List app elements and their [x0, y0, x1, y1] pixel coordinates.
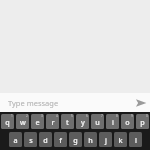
- staticText: r: [51, 117, 55, 127]
- staticText: y: [81, 117, 85, 127]
- staticText: l: [135, 135, 137, 145]
- button[interactable]: 3: [31, 114, 44, 129]
- staticText: 7: [101, 114, 103, 118]
- staticText: Type message: [8, 98, 59, 108]
- staticText: 8: [116, 114, 118, 118]
- staticText: 3: [41, 114, 43, 118]
- button[interactable]: j: [99, 132, 112, 147]
- button[interactable]: k: [114, 132, 127, 147]
- button[interactable]: 4: [46, 114, 59, 129]
- staticText: i: [112, 117, 114, 127]
- staticText: u: [95, 117, 100, 127]
- staticText: h: [88, 135, 93, 145]
- button[interactable]: a: [9, 132, 22, 147]
- staticText: a: [13, 135, 18, 145]
- button[interactable]: h: [84, 132, 97, 147]
- staticText: 0: [146, 114, 148, 118]
- button[interactable]: Type message: [0, 93, 131, 112]
- staticText: d: [43, 135, 48, 145]
- button[interactable]: 6: [76, 114, 89, 129]
- button[interactable]: l: [129, 132, 142, 147]
- staticText: q: [5, 117, 10, 127]
- staticText: 9: [131, 114, 133, 118]
- staticText: 5: [71, 114, 73, 118]
- button[interactable]: Send: [131, 93, 150, 112]
- staticText: t: [66, 117, 69, 127]
- button[interactable]: 8: [106, 114, 119, 129]
- staticText: e: [35, 117, 40, 127]
- staticText: 4: [56, 114, 58, 118]
- staticText: p: [140, 117, 145, 127]
- button[interactable]: 5: [61, 114, 74, 129]
- staticText: s: [29, 135, 33, 145]
- button[interactable]: 0: [136, 114, 149, 129]
- staticText: k: [118, 135, 123, 145]
- button[interactable]: f: [54, 132, 67, 147]
- staticText: 2: [26, 114, 28, 118]
- button[interactable]: 7: [91, 114, 104, 129]
- staticText: g: [73, 135, 78, 145]
- staticText: j: [105, 135, 107, 145]
- button[interactable]: s: [24, 132, 37, 147]
- button[interactable]: 1: [1, 114, 14, 129]
- staticText: w: [20, 117, 26, 127]
- button[interactable]: 9: [121, 114, 134, 129]
- button[interactable]: g: [69, 132, 82, 147]
- staticText: 6: [86, 114, 88, 118]
- staticText: f: [59, 135, 62, 145]
- button[interactable]: d: [39, 132, 52, 147]
- staticText: 1: [11, 114, 13, 118]
- staticText: o: [125, 117, 130, 127]
- button[interactable]: 2: [16, 114, 29, 129]
